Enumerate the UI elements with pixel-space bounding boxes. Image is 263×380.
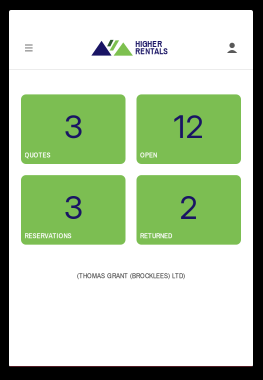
staticText: HIGHER (135, 38, 162, 49)
staticText: 12 (173, 107, 204, 146)
staticText: 3 (64, 188, 83, 227)
staticText: QUOTES (25, 150, 51, 160)
staticText: 2 (179, 188, 198, 227)
staticText: OPEN (140, 150, 157, 160)
staticText: 3 (64, 107, 83, 146)
button[interactable]: 3 (21, 175, 125, 245)
staticText: RETURNED (140, 231, 172, 240)
button[interactable]: 2 (136, 175, 241, 245)
button[interactable]: 12 (136, 94, 241, 164)
button[interactable]: Account (221, 37, 243, 59)
staticText: RENTALS (135, 46, 168, 57)
button[interactable]: 3 (21, 94, 125, 164)
staticText: (THOMAS GRANT (BROCKLEES) LTD) (77, 271, 185, 281)
staticText: RESERVATIONS (25, 231, 72, 240)
button[interactable]: Menu (18, 37, 40, 59)
